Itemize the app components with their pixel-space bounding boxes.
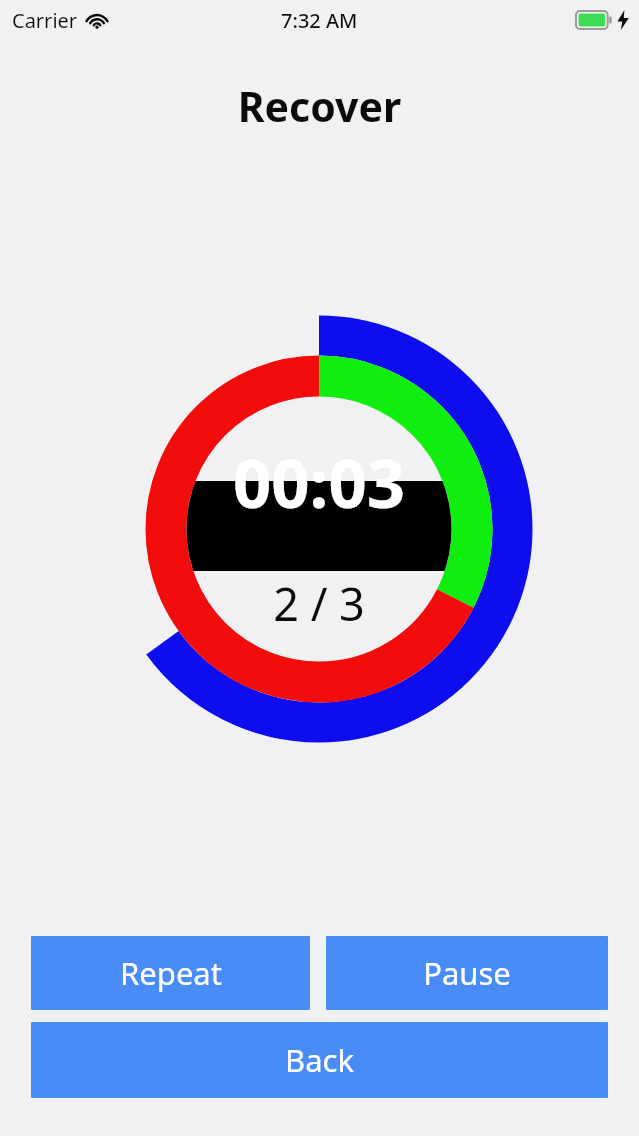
staticText: Recover	[0, 78, 639, 134]
button[interactable]: Back	[31, 1022, 608, 1098]
staticText: Back	[285, 1039, 354, 1081]
staticText: 7:32 AM	[281, 7, 358, 34]
staticText: 00:03	[105, 436, 533, 527]
button[interactable]: Repeat	[31, 936, 310, 1010]
button[interactable]: Pause	[326, 936, 608, 1010]
staticText: Pause	[423, 952, 511, 994]
staticText: Repeat	[120, 952, 222, 994]
staticText: 2 / 3	[105, 573, 533, 634]
staticText: Carrier	[12, 7, 78, 34]
